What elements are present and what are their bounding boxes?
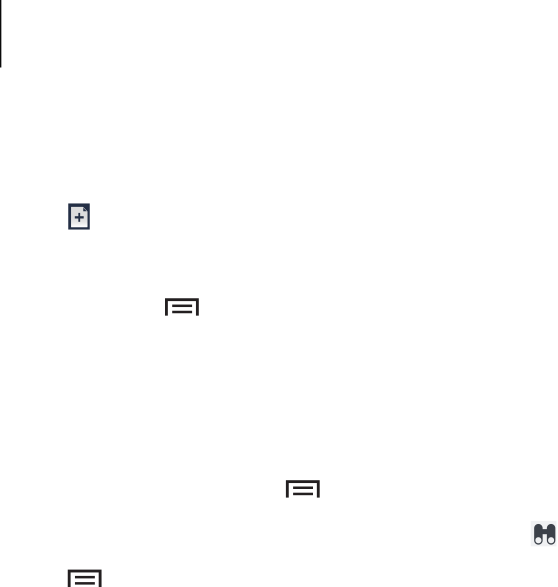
- button[interactable]: Note: [165, 298, 199, 316]
- button[interactable]: New document: [68, 203, 90, 229]
- button[interactable]: Note: [68, 570, 102, 587]
- button[interactable]: Note: [286, 480, 320, 498]
- button[interactable]: Browse: [531, 521, 556, 546]
